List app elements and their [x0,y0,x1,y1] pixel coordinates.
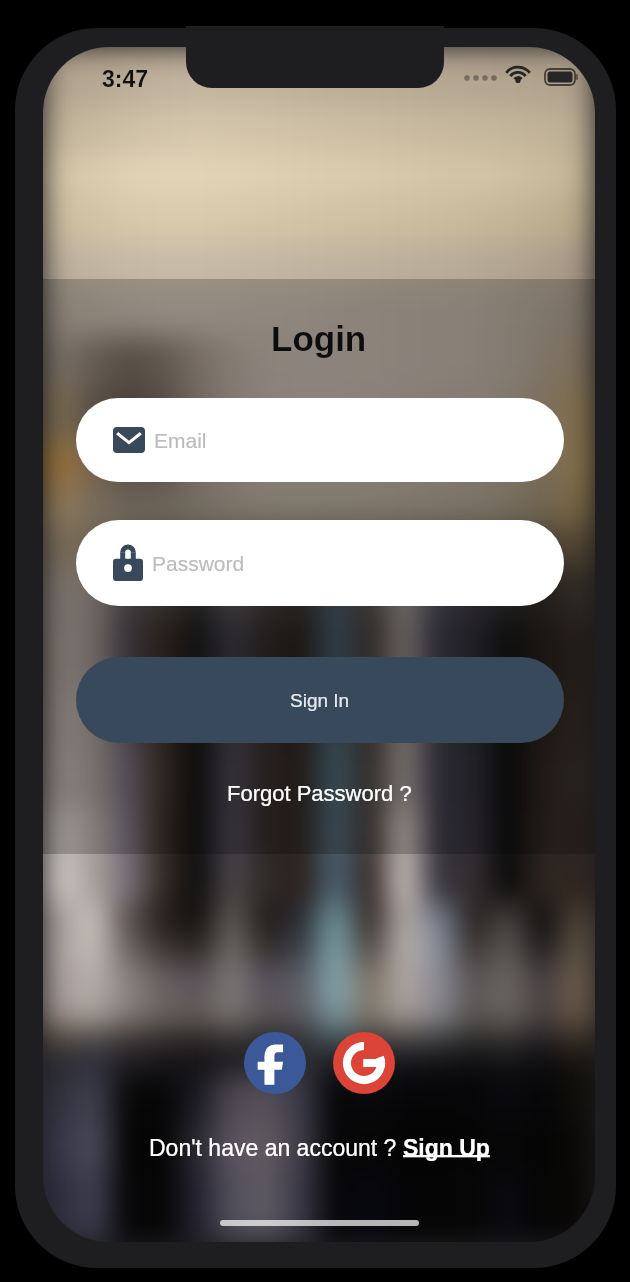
button[interactable]: Sign in with Facebook [244,1032,306,1094]
staticText: 3:47 [102,66,149,92]
button[interactable]: Sign in with Google [333,1032,395,1094]
staticText: Sign Up [403,1135,490,1161]
button[interactable]: Sign Up [403,1135,490,1161]
staticText: Login [271,319,367,358]
button[interactable]: Email [76,398,564,482]
button[interactable]: Sign In [76,657,564,743]
staticText: Password [152,552,245,575]
staticText: Forgot Password ? [227,781,412,806]
button[interactable]: Password [76,520,564,606]
staticText: Sign In [290,690,350,711]
staticText: Email [154,429,207,452]
button[interactable]: Forgot Password ? [217,777,422,810]
staticText: Don't have an account ? [149,1135,403,1161]
